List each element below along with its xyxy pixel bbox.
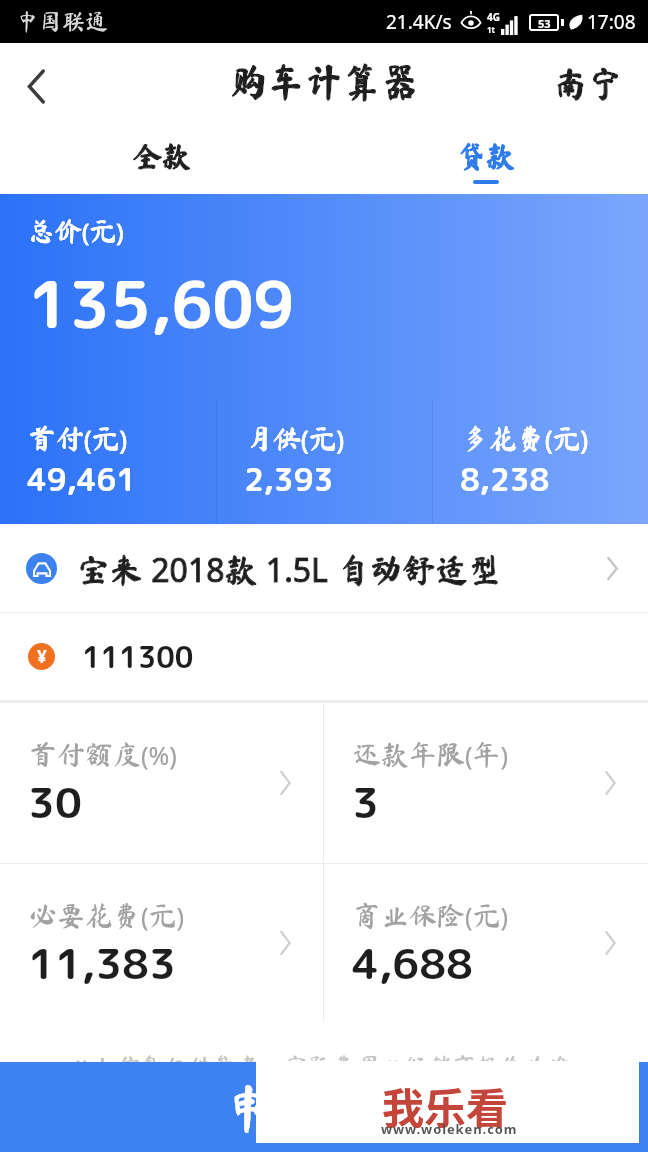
- button[interactable]: 商业保险(元): [324, 864, 648, 1021]
- staticText: 购车计算器: [229, 63, 420, 101]
- button[interactable]: 全款: [0, 129, 324, 194]
- staticText: ¥: [37, 645, 47, 668]
- staticText: 3: [352, 773, 379, 832]
- button[interactable]: 还款年限(年): [324, 703, 648, 863]
- staticText: 南宁: [553, 66, 624, 101]
- button[interactable]: 申请贷款: [0, 1062, 648, 1152]
- staticText: 17:08: [587, 9, 636, 35]
- staticText: 首付额度(%): [29, 738, 177, 772]
- staticText: 宝来 2018款 1.5L 自动舒适型: [77, 548, 502, 592]
- button[interactable]: 首付额度(%): [0, 703, 323, 863]
- button[interactable]: 必要花费(元): [0, 864, 323, 1021]
- staticText: 以上信息仅供参考，实际费用以经销商报价为准: [68, 1054, 648, 1078]
- staticText: 首付(元): [28, 422, 128, 456]
- staticText: 全款: [133, 141, 192, 170]
- staticText: 多花费(元): [461, 422, 589, 456]
- staticText: 月供(元): [245, 422, 345, 456]
- staticText: 49,461: [27, 458, 137, 501]
- staticText: 商业保险(元): [353, 899, 509, 933]
- staticText: 4,688: [352, 934, 474, 993]
- staticText: 1t: [487, 24, 496, 35]
- staticText: 总价(元): [28, 215, 124, 248]
- staticText: 中国联通: [16, 10, 108, 33]
- staticText: 多花费(元): [461, 422, 589, 456]
- staticText: 135,609: [28, 259, 295, 348]
- staticText: www.woleken.com: [381, 1120, 518, 1138]
- staticText: 53: [538, 16, 551, 29]
- staticText: 11,383: [28, 934, 176, 993]
- staticText: 111300: [82, 637, 194, 677]
- staticText: 2,393: [244, 458, 334, 501]
- button[interactable]: 贷款: [324, 129, 648, 194]
- staticText: 21.4K/s: [386, 9, 452, 35]
- staticText: 购车计算器: [229, 63, 420, 101]
- staticText: 贷款: [457, 141, 516, 170]
- staticText: 必要花费(元): [29, 899, 185, 933]
- staticText: 贷款: [457, 141, 516, 170]
- button[interactable]: Back: [0, 50, 72, 122]
- button[interactable]: 南宁: [551, 63, 626, 110]
- staticText: 4G: [487, 10, 500, 24]
- staticText: 还款年限(年): [353, 738, 509, 772]
- staticText: 首付(元): [28, 422, 128, 456]
- staticText: 总价(元): [28, 215, 124, 248]
- staticText: 申请贷款: [226, 1083, 423, 1132]
- staticText: 我乐看: [382, 1075, 509, 1136]
- staticText: 宝来 2018款 1.5L 自动舒适型: [77, 548, 502, 592]
- staticText: 月供(元): [245, 422, 345, 456]
- staticText: 30: [28, 773, 82, 832]
- staticText: 南宁: [553, 66, 624, 101]
- staticText: 全款: [133, 141, 192, 170]
- staticText: 8,238: [460, 458, 550, 501]
- button[interactable]: 宝来 2018款 1.5L 自动舒适型: [0, 524, 648, 613]
- staticText: 申请贷款: [226, 1083, 423, 1132]
